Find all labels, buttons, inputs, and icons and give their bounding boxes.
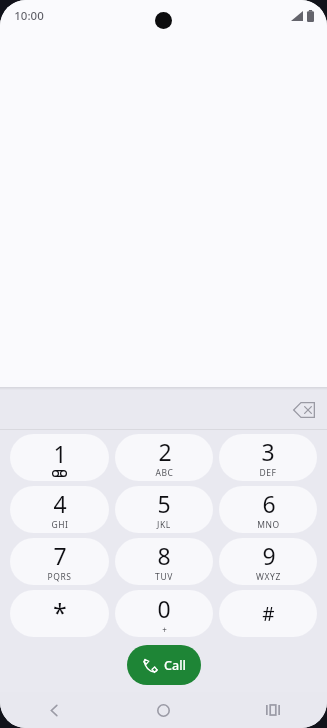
button[interactable]: Call — [127, 645, 201, 685]
button[interactable]: 4 — [10, 486, 109, 533]
staticText: JKL — [157, 519, 171, 531]
button[interactable]: 6 — [219, 486, 317, 533]
button[interactable]: 0 — [115, 590, 213, 637]
button[interactable]: Recent apps — [218, 692, 327, 728]
button[interactable]: Back — [0, 692, 109, 728]
staticText: DEF — [259, 467, 277, 479]
staticText: 1 — [53, 438, 67, 469]
staticText: 0 — [157, 593, 171, 624]
button[interactable]: 2 — [115, 434, 213, 481]
button[interactable]: 9 — [219, 538, 317, 585]
staticText: MNO — [257, 519, 280, 531]
staticText: 2 — [158, 436, 172, 467]
staticText: + — [162, 624, 167, 635]
button[interactable]: # — [219, 590, 317, 637]
button[interactable]: Backspace — [287, 393, 321, 427]
staticText: 8 — [157, 540, 171, 571]
button[interactable]: 8 — [115, 538, 213, 585]
staticText: TUV — [155, 571, 173, 583]
staticText: 4 — [53, 488, 67, 519]
staticText: # — [262, 601, 275, 627]
staticText: ABC — [155, 467, 174, 479]
button[interactable]: 7 — [10, 538, 109, 585]
button[interactable]: * — [10, 590, 109, 637]
button[interactable]: Home — [109, 692, 218, 728]
button[interactable]: 1 — [10, 434, 109, 481]
staticText: 5 — [157, 488, 171, 519]
staticText: 9 — [262, 540, 276, 571]
button[interactable]: 5 — [115, 486, 213, 533]
button[interactable]: 3 — [219, 434, 317, 481]
staticText: Call — [164, 657, 186, 674]
staticText: 6 — [262, 488, 276, 519]
staticText: 10:00 — [14, 8, 44, 24]
staticText: GHI — [51, 519, 69, 531]
staticText: * — [53, 595, 67, 629]
staticText: 3 — [261, 436, 275, 467]
staticText: WXYZ — [256, 571, 281, 583]
staticText: 7 — [53, 540, 67, 571]
staticText: PQRS — [47, 571, 72, 583]
